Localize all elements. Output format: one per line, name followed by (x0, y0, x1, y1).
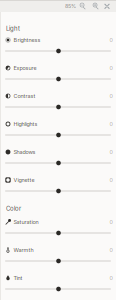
button[interactable]: Tint (0, 0, 116, 28)
button[interactable]: Shadows (0, 0, 116, 28)
button[interactable]: Exposure (0, 0, 116, 28)
button[interactable]: Highlights (0, 0, 116, 28)
staticText: 85% (65, 3, 76, 9)
button[interactable]: Close (102, 2, 111, 11)
button[interactable]: Brightness (0, 0, 116, 28)
button[interactable]: Contrast (0, 0, 116, 28)
staticText: Highlights (14, 121, 38, 127)
staticText: 0 (109, 275, 112, 281)
button[interactable]: Zoom in (91, 1, 100, 10)
button[interactable]: Saturation (0, 0, 116, 28)
staticText: Contrast (14, 93, 36, 99)
button[interactable]: 85% (64, 2, 77, 10)
staticText: Warmth (14, 247, 34, 253)
staticText: Vignette (14, 177, 35, 183)
staticText: Shadows (14, 149, 36, 155)
staticText: Light (6, 25, 20, 32)
button[interactable]: Zoom out (78, 1, 87, 10)
button[interactable]: Warmth (0, 0, 116, 28)
staticText: Tint (14, 275, 23, 281)
staticText: 0 (109, 149, 112, 155)
staticText: 0 (109, 93, 112, 99)
staticText: Color (6, 205, 21, 212)
staticText: 0 (109, 219, 112, 225)
staticText: Saturation (14, 219, 39, 225)
staticText: Exposure (14, 65, 37, 71)
button[interactable]: Vignette (0, 0, 116, 28)
staticText: 0 (109, 37, 112, 43)
staticText: Brightness (14, 37, 41, 43)
staticText: 0 (109, 177, 112, 183)
staticText: 0 (109, 247, 112, 253)
staticText: 0 (109, 65, 112, 71)
staticText: 0 (109, 121, 112, 127)
